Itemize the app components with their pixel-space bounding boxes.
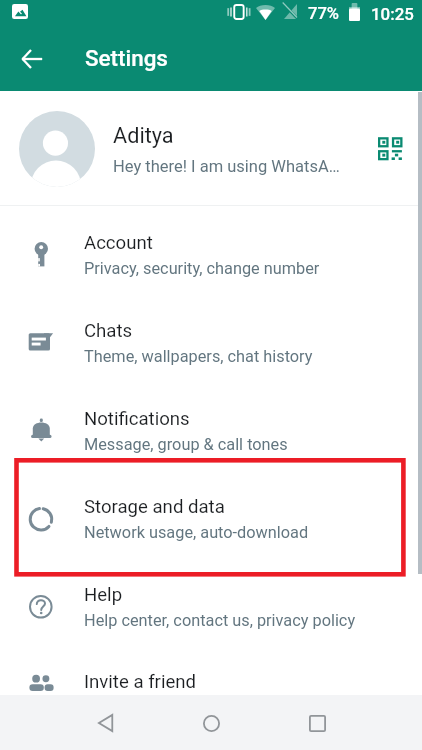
staticText: Account [84,232,153,254]
button[interactable]: Back [81,699,129,747]
button[interactable]: Invite a friend [0,645,422,733]
staticText: 10:25 [371,4,414,24]
staticText: Storage and data [84,496,225,518]
button[interactable]: Navigate up [10,37,54,81]
staticText: Settings [85,45,168,71]
button[interactable]: Aditya [0,91,422,205]
staticText: Invite a friend [84,671,197,693]
staticText: Network usage, auto-download [84,523,309,542]
staticText: Hey there! I am using WhatsA… [113,157,340,176]
button[interactable]: Notifications [0,382,422,470]
staticText: Help center, contact us, privacy policy [84,611,356,630]
staticText: Chats [84,320,133,342]
button[interactable]: Help [0,558,422,646]
button[interactable]: Storage and data [0,470,422,558]
staticText: Theme, wallpapers, chat history [84,347,313,366]
button[interactable]: Account [0,206,422,294]
button[interactable]: Recents [293,699,341,747]
button[interactable]: Chats [0,294,422,382]
staticText: Notifications [84,408,190,430]
staticText: Privacy, security, change number [84,259,320,278]
staticText: Aditya [113,123,174,148]
button[interactable]: Home [187,699,235,747]
staticText: Message, group & call tones [84,435,288,454]
staticText: 77% [308,4,340,23]
button[interactable]: QR code [368,127,412,171]
staticText: Help [84,584,123,606]
